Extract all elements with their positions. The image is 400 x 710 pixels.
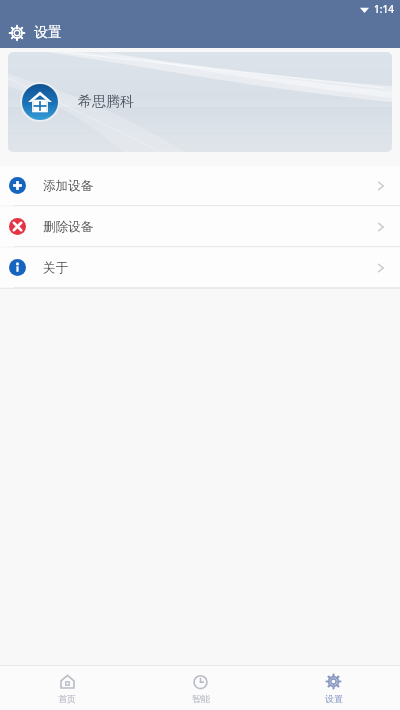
staticText: 添加设备	[43, 178, 93, 194]
button[interactable]: 智能	[134, 666, 267, 710]
button[interactable]: 删除设备	[0, 207, 400, 246]
button[interactable]: 关于	[0, 248, 400, 287]
staticText: 1:14	[374, 2, 394, 16]
button[interactable]: 首页	[0, 666, 134, 710]
staticText: 设置	[34, 24, 62, 42]
button[interactable]: 希思腾科	[8, 52, 392, 152]
button[interactable]: 设置	[267, 666, 400, 710]
staticText: 关于	[43, 260, 68, 276]
button[interactable]: 添加设备	[0, 166, 400, 205]
staticText: 希思腾科	[78, 93, 134, 111]
staticText: 智能	[192, 693, 210, 704]
staticText: 首页	[58, 693, 76, 704]
staticText: 设置	[325, 693, 343, 704]
staticText: 删除设备	[43, 219, 93, 235]
